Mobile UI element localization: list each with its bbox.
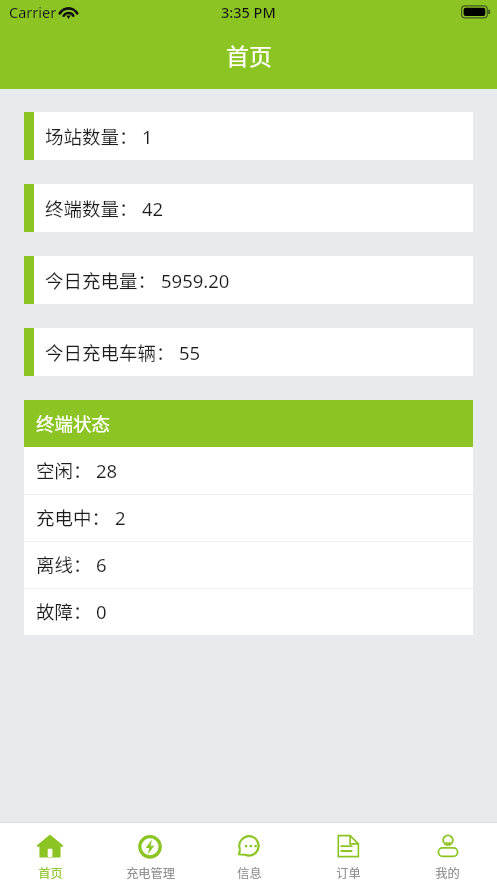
staticText: 首页 (38, 864, 63, 882)
staticText: 2 (115, 505, 126, 530)
staticText: 订单 (336, 864, 361, 882)
button[interactable]: 故障： (24, 588, 473, 635)
staticText: 场站数量： (45, 123, 138, 150)
staticText: 空闲： (36, 457, 92, 484)
staticText: 55 (179, 340, 201, 365)
staticText: 充电管理 (126, 864, 175, 882)
staticText: 0 (96, 599, 107, 624)
button[interactable]: Home (0, 823, 100, 883)
staticText: 42 (142, 196, 164, 221)
button[interactable]: Profile (398, 823, 497, 883)
staticText: 今日充电量： (45, 267, 157, 294)
button[interactable]: 终端数量： (24, 184, 473, 232)
staticText: 3:35 PM (221, 2, 276, 22)
staticText: 1 (142, 124, 153, 149)
staticText: 信息 (237, 864, 262, 882)
button[interactable]: 今日充电量： (24, 256, 473, 304)
staticText: 首页 (226, 38, 272, 71)
button[interactable]: 场站数量： (24, 112, 473, 160)
button[interactable]: 离线： (24, 541, 473, 588)
button[interactable]: Messages (200, 823, 299, 883)
button[interactable]: Charging (100, 823, 200, 883)
staticText: 故障： (36, 598, 92, 625)
button[interactable]: 终端状态 (24, 400, 473, 447)
staticText: 终端状态 (36, 410, 111, 437)
staticText: 6 (96, 552, 107, 577)
button[interactable]: 充电中： (24, 494, 473, 541)
staticText: 终端数量： (45, 195, 138, 222)
staticText: 5959.20 (161, 268, 230, 293)
staticText: Carrier (9, 2, 57, 22)
staticText: 离线： (36, 551, 92, 578)
button[interactable]: 今日充电车辆： (24, 328, 473, 376)
button[interactable]: 空闲： (24, 447, 473, 494)
staticText: 28 (96, 458, 118, 483)
staticText: 充电中： (36, 504, 111, 531)
button[interactable]: Orders (299, 823, 398, 883)
staticText: 今日充电车辆： (45, 339, 175, 366)
staticText: 我的 (435, 864, 460, 882)
